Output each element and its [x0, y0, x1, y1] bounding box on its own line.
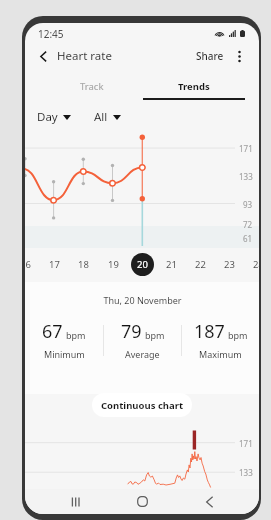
button[interactable]: 20	[128, 246, 157, 282]
button[interactable]: 24	[244, 246, 259, 282]
staticText: Continuous chart	[101, 399, 184, 412]
staticText: 19	[108, 258, 119, 271]
staticText: 61	[243, 233, 253, 244]
button[interactable]: Share	[191, 44, 229, 68]
staticText: 72	[243, 219, 253, 230]
button[interactable]: Continuous chart	[92, 393, 192, 417]
button[interactable]: Back	[32, 45, 54, 67]
button[interactable]: 17	[40, 246, 69, 282]
button[interactable]: 23	[215, 246, 244, 282]
button[interactable]: Track	[41, 72, 143, 100]
button[interactable]: 16	[25, 246, 40, 282]
button[interactable]: 18	[69, 246, 98, 282]
staticText: bpm	[66, 329, 86, 341]
staticText: 23	[224, 258, 235, 271]
staticText: Average	[125, 348, 160, 360]
staticText: 133	[239, 467, 253, 478]
staticText: Day	[37, 109, 58, 125]
button[interactable]: Day	[32, 104, 76, 130]
button[interactable]: 67	[25, 319, 103, 360]
staticText: Trends	[178, 80, 210, 93]
staticText: 93	[243, 199, 253, 210]
staticText: 79	[121, 319, 142, 344]
button[interactable]: 79	[104, 319, 181, 360]
button[interactable]: Home	[126, 489, 158, 514]
staticText: 67	[42, 319, 63, 344]
staticText: 16	[25, 258, 31, 271]
staticText: 12:45	[38, 27, 64, 41]
button[interactable]: 19	[99, 246, 128, 282]
staticText: 171	[239, 438, 253, 449]
button[interactable]: 22	[186, 246, 215, 282]
staticText: All	[94, 109, 108, 125]
staticText: bpm	[145, 329, 165, 341]
staticText: Maximum	[199, 348, 242, 360]
staticText: Heart rate	[57, 48, 112, 64]
staticText: Track	[80, 80, 104, 93]
staticText: Thu, 20 November	[103, 294, 182, 306]
button[interactable]: All	[89, 104, 126, 130]
staticText: 17	[49, 258, 60, 271]
staticText: Share	[196, 49, 224, 63]
button[interactable]: More options	[230, 47, 248, 65]
button[interactable]: Back	[193, 489, 225, 514]
button[interactable]: Recent apps	[60, 489, 92, 514]
staticText: bpm	[228, 329, 248, 341]
button[interactable]: 187	[182, 319, 259, 360]
staticText: 21	[166, 258, 177, 271]
staticText: 22	[195, 258, 206, 271]
button[interactable]: Trends	[143, 72, 245, 100]
staticText: 133	[239, 171, 253, 182]
staticText: 18	[78, 258, 89, 271]
staticText: 187	[194, 319, 225, 344]
staticText: Minimum	[44, 348, 85, 360]
staticText: 24	[253, 258, 259, 271]
staticText: 20	[137, 258, 148, 271]
button[interactable]: 21	[157, 246, 186, 282]
staticText: 171	[239, 143, 253, 154]
